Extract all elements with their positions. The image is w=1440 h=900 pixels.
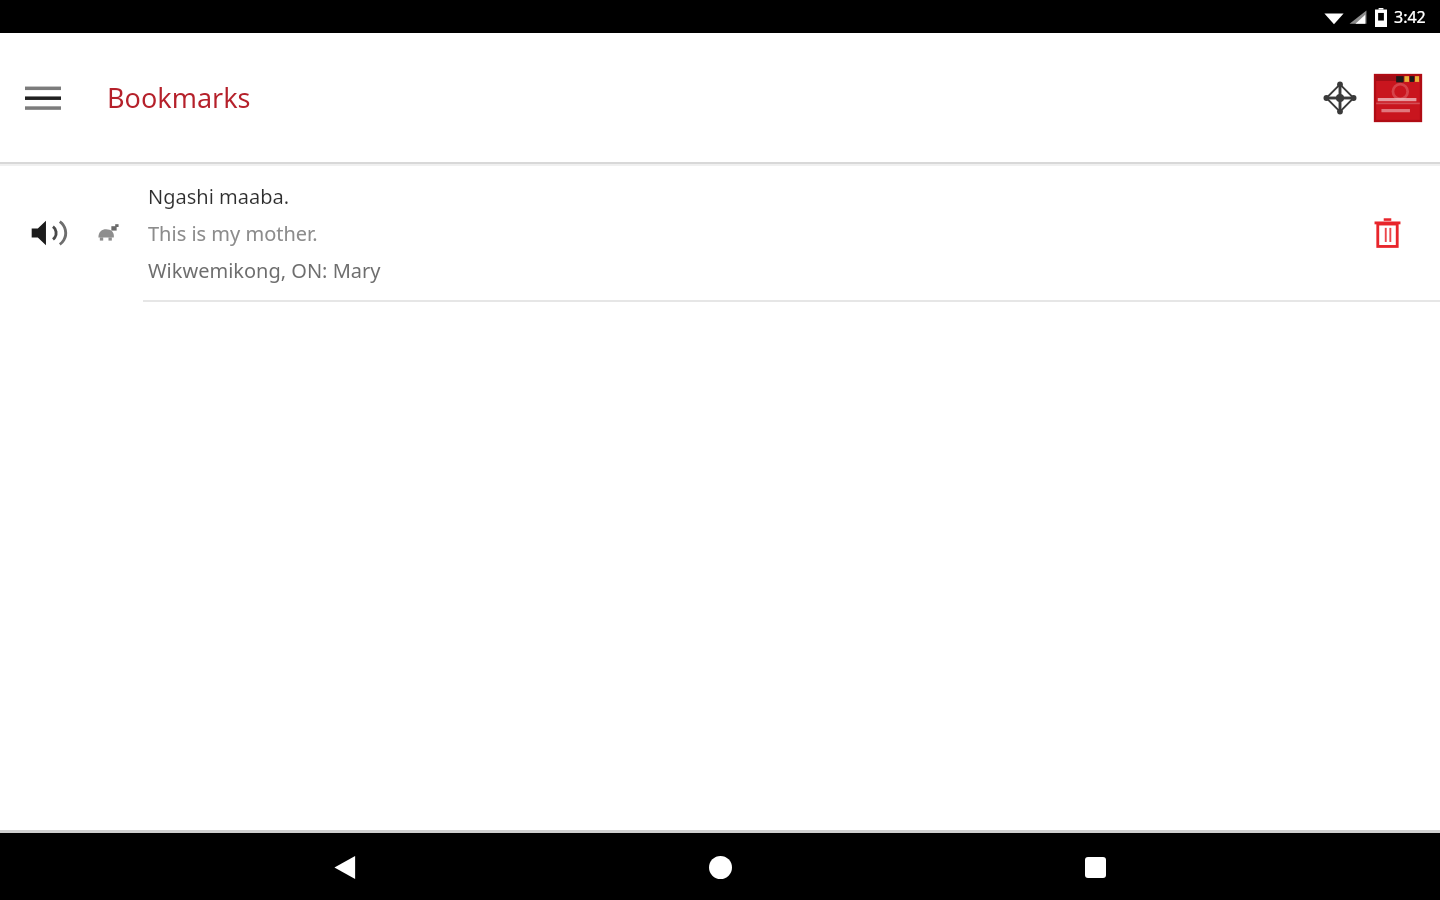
- button[interactable]: Play audio: [0, 166, 1440, 302]
- button[interactable]: App logo: [1372, 72, 1424, 124]
- staticText: Ngashi maaba.: [148, 183, 290, 210]
- button[interactable]: Play audio: [22, 207, 74, 259]
- staticText: Bookmarks: [107, 79, 251, 116]
- button[interactable]: Open navigation menu: [10, 65, 76, 131]
- button[interactable]: Home: [690, 837, 750, 897]
- staticText: This is my mother.: [148, 220, 318, 247]
- button[interactable]: Move: [1314, 72, 1366, 124]
- button[interactable]: Back: [315, 837, 375, 897]
- button[interactable]: Category: [91, 216, 125, 250]
- staticText: 3:42: [1394, 6, 1426, 28]
- button[interactable]: Recent apps: [1065, 837, 1125, 897]
- button[interactable]: Delete bookmark: [1360, 206, 1414, 260]
- staticText: Wikwemikong, ON: Mary: [148, 257, 381, 284]
